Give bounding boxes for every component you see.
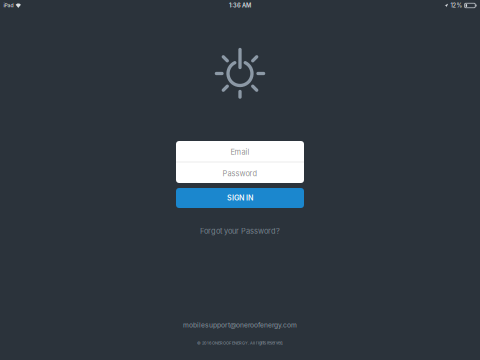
staticText: 12% xyxy=(450,2,462,9)
staticText: iPad xyxy=(3,2,13,8)
staticText: SIGN IN xyxy=(227,194,253,202)
button[interactable]: Forgot your Password? xyxy=(200,226,280,235)
staticText: Forgot your Password? xyxy=(200,226,280,235)
button[interactable]: SIGN IN xyxy=(176,188,304,208)
staticText: © 2016 ONEROOF ENERGY. All rights reserv… xyxy=(197,341,283,345)
button[interactable]: mobilesupport@oneroofenergy.com xyxy=(183,321,297,329)
staticText: Email xyxy=(230,147,249,156)
button[interactable]: Email xyxy=(176,141,304,161)
staticText: mobilesupport@oneroofenergy.com xyxy=(183,321,297,329)
staticText: 1:36 AM xyxy=(229,2,251,9)
staticText: Password xyxy=(222,169,257,178)
button[interactable]: Password xyxy=(176,162,304,183)
